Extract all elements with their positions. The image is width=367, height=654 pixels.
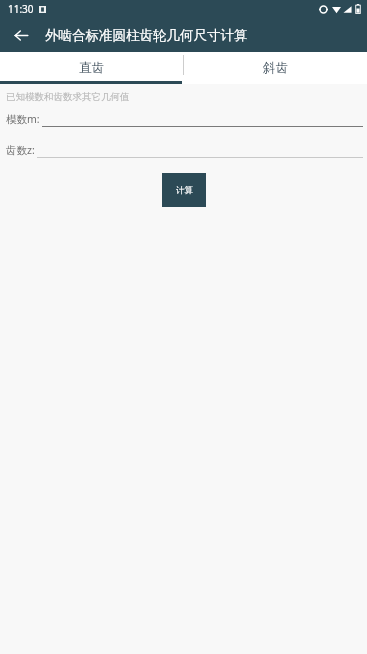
button[interactable]: 计算	[162, 173, 206, 207]
button[interactable]	[37, 144, 363, 158]
staticText: 11:30	[8, 2, 34, 16]
button[interactable]	[42, 113, 363, 127]
staticText: 计算	[176, 185, 193, 196]
staticText: 直齿	[79, 60, 104, 76]
staticText: 齿数z:	[6, 143, 35, 157]
staticText: 外啮合标准圆柱齿轮几何尺寸计算	[45, 27, 248, 44]
button[interactable]: Back	[8, 22, 34, 48]
staticText: 模数m:	[6, 112, 40, 126]
button[interactable]: 斜齿	[183, 52, 367, 84]
staticText: 斜齿	[263, 60, 288, 76]
staticText: 已知模数和齿数求其它几何值	[6, 91, 130, 103]
button[interactable]: 直齿	[0, 52, 183, 84]
